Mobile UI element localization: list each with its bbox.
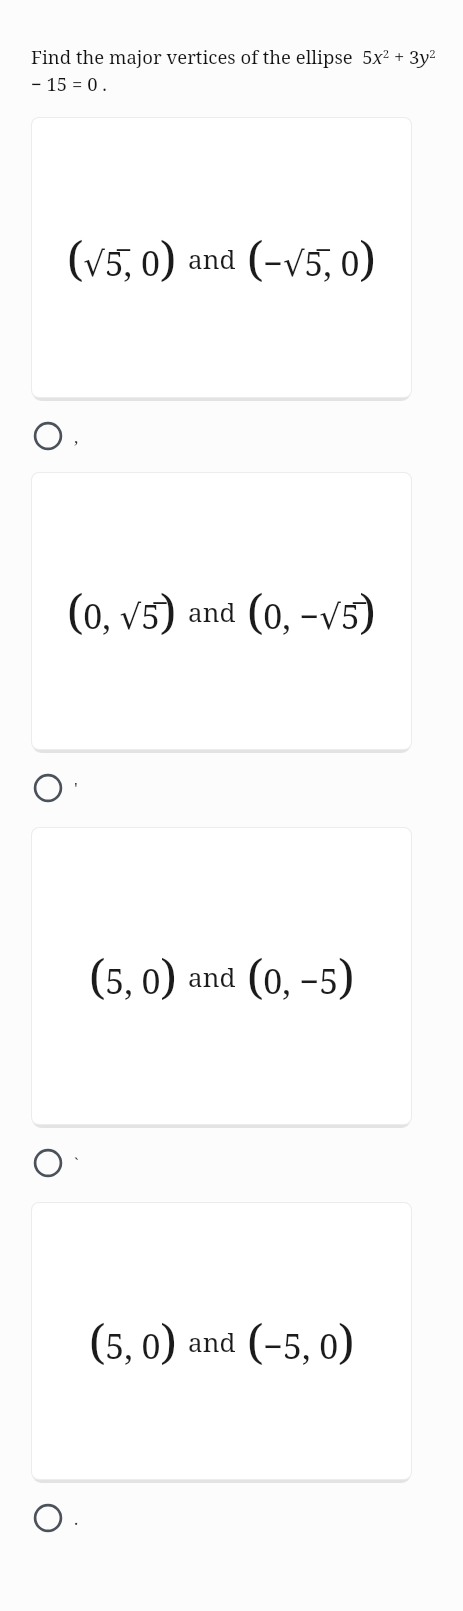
staticText: . — [74, 1507, 79, 1530]
staticText: and — [188, 959, 236, 994]
staticText: (−√5̅, 0) — [247, 226, 376, 290]
staticText: (0, −5) — [247, 944, 355, 1008]
staticText: , — [74, 425, 79, 448]
staticText: (5, 0) — [89, 944, 177, 1008]
staticText: (√5̅, 0) — [67, 226, 177, 290]
staticText: (0, −√5̅) — [247, 579, 376, 643]
staticText: ' — [74, 777, 78, 800]
staticText: (0, √5̅) — [67, 579, 177, 643]
button[interactable]: (√5̅, 0) — [32, 118, 411, 397]
button[interactable]: Select second answer option — [31, 767, 78, 809]
staticText: (−5, 0) — [247, 1309, 355, 1373]
staticText: and — [188, 1324, 236, 1359]
staticText: ` — [74, 1152, 79, 1175]
staticText: (5, 0) — [89, 1309, 177, 1373]
button[interactable]: (5, 0) — [32, 828, 411, 1124]
button[interactable]: (0, √5̅) — [32, 473, 411, 749]
button[interactable]: Select first answer option — [31, 415, 79, 457]
staticText: and — [188, 241, 236, 276]
staticText: and — [188, 594, 236, 629]
button[interactable]: Select fourth answer option — [31, 1497, 79, 1539]
staticText: Find the major vertices of the ellipse 5… — [31, 44, 449, 97]
button[interactable]: Select third answer option — [31, 1142, 79, 1184]
button[interactable]: (5, 0) — [32, 1203, 411, 1479]
